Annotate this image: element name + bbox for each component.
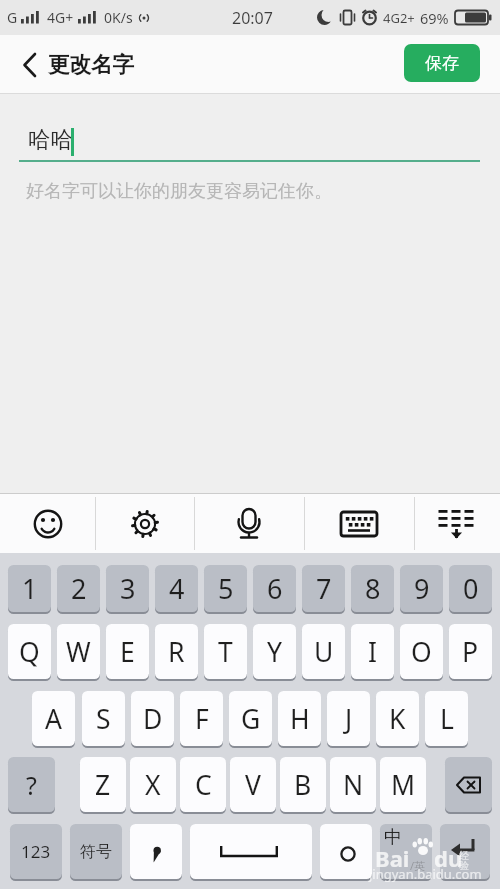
- button[interactable]: [414, 494, 500, 553]
- staticText: 验: [459, 859, 469, 872]
- button[interactable]: ?: [8, 757, 55, 812]
- staticText: F: [195, 701, 209, 737]
- staticText: 1: [22, 570, 38, 607]
- staticText: O: [411, 634, 432, 670]
- button[interactable]: 中: [380, 824, 432, 879]
- button[interactable]: T: [204, 624, 247, 679]
- staticText: 哈哈: [28, 125, 73, 153]
- button[interactable]: 8: [351, 565, 394, 612]
- button[interactable]: U: [302, 624, 345, 679]
- staticText: B: [294, 767, 312, 803]
- staticText: 0K/s: [104, 8, 133, 27]
- staticText: R: [168, 634, 185, 670]
- button[interactable]: 5: [204, 565, 247, 612]
- staticText: H: [290, 701, 310, 737]
- staticText: P: [462, 634, 479, 670]
- button[interactable]: 3: [106, 565, 149, 612]
- button[interactable]: 0: [449, 565, 492, 612]
- button[interactable]: [130, 824, 182, 879]
- button[interactable]: 保存: [404, 44, 480, 82]
- staticText: jingyan.baidu.com: [369, 865, 482, 883]
- button[interactable]: O: [400, 624, 443, 679]
- button[interactable]: G: [229, 691, 272, 746]
- staticText: 保存: [425, 53, 459, 74]
- button[interactable]: H: [278, 691, 321, 746]
- staticText: 经: [459, 849, 469, 862]
- button[interactable]: 4: [155, 565, 198, 612]
- button[interactable]: 6: [253, 565, 296, 612]
- staticText: G: [7, 8, 18, 27]
- staticText: 7: [316, 570, 332, 607]
- staticText: I: [368, 634, 377, 670]
- button[interactable]: D: [131, 691, 174, 746]
- button[interactable]: Z: [80, 757, 126, 812]
- staticText: X: [145, 767, 161, 803]
- button[interactable]: [194, 494, 304, 553]
- staticText: Y: [267, 634, 282, 670]
- button[interactable]: Q: [8, 624, 51, 679]
- button[interactable]: B: [280, 757, 326, 812]
- staticText: 更改名字: [48, 51, 134, 78]
- button[interactable]: 符号: [70, 824, 122, 879]
- staticText: 20:07: [232, 7, 273, 29]
- staticText: 123: [21, 840, 51, 863]
- button[interactable]: [440, 824, 490, 879]
- button[interactable]: L: [425, 691, 468, 746]
- staticText: du: [434, 843, 463, 873]
- button[interactable]: V: [230, 757, 276, 812]
- staticText: 中: [384, 826, 402, 849]
- staticText: 6: [267, 570, 283, 607]
- staticText: W: [66, 634, 91, 670]
- button[interactable]: [8, 43, 52, 87]
- staticText: 2: [71, 570, 87, 607]
- staticText: K: [389, 701, 406, 737]
- staticText: /英: [410, 858, 426, 873]
- button[interactable]: 哈哈: [0, 94, 500, 204]
- staticText: Q: [19, 634, 40, 670]
- staticText: L: [440, 701, 454, 737]
- staticText: E: [120, 634, 135, 670]
- staticText: C: [195, 767, 212, 803]
- button[interactable]: 1: [8, 565, 51, 612]
- staticText: Bai: [375, 843, 410, 873]
- button[interactable]: E: [106, 624, 149, 679]
- button[interactable]: [445, 757, 492, 812]
- staticText: U: [314, 634, 334, 670]
- button[interactable]: W: [57, 624, 100, 679]
- button[interactable]: Y: [253, 624, 296, 679]
- button[interactable]: K: [376, 691, 419, 746]
- button[interactable]: A: [32, 691, 75, 746]
- staticText: J: [345, 701, 353, 737]
- staticText: S: [96, 701, 111, 737]
- button[interactable]: F: [180, 691, 223, 746]
- staticText: 69%: [420, 8, 449, 28]
- staticText: N: [343, 767, 364, 803]
- button[interactable]: M: [380, 757, 426, 812]
- staticText: 符号: [80, 842, 112, 862]
- button[interactable]: J: [327, 691, 370, 746]
- staticText: V: [245, 767, 261, 803]
- staticText: T: [218, 634, 233, 670]
- button[interactable]: X: [130, 757, 176, 812]
- button[interactable]: I: [351, 624, 394, 679]
- button[interactable]: [0, 494, 95, 553]
- staticText: 4G2+: [383, 9, 415, 27]
- button[interactable]: 9: [400, 565, 443, 612]
- button[interactable]: [190, 824, 312, 879]
- button[interactable]: 7: [302, 565, 345, 612]
- staticText: 4G+: [47, 8, 74, 27]
- button[interactable]: [320, 824, 372, 879]
- button[interactable]: 2: [57, 565, 100, 612]
- staticText: 9: [414, 570, 430, 607]
- staticText: Z: [95, 767, 111, 803]
- button[interactable]: R: [155, 624, 198, 679]
- button[interactable]: S: [82, 691, 125, 746]
- staticText: A: [45, 701, 62, 737]
- button[interactable]: [304, 494, 414, 553]
- staticText: 5: [218, 570, 234, 607]
- button[interactable]: N: [330, 757, 376, 812]
- button[interactable]: [95, 494, 194, 553]
- button[interactable]: C: [180, 757, 226, 812]
- button[interactable]: P: [449, 624, 492, 679]
- button[interactable]: 123: [10, 824, 62, 879]
